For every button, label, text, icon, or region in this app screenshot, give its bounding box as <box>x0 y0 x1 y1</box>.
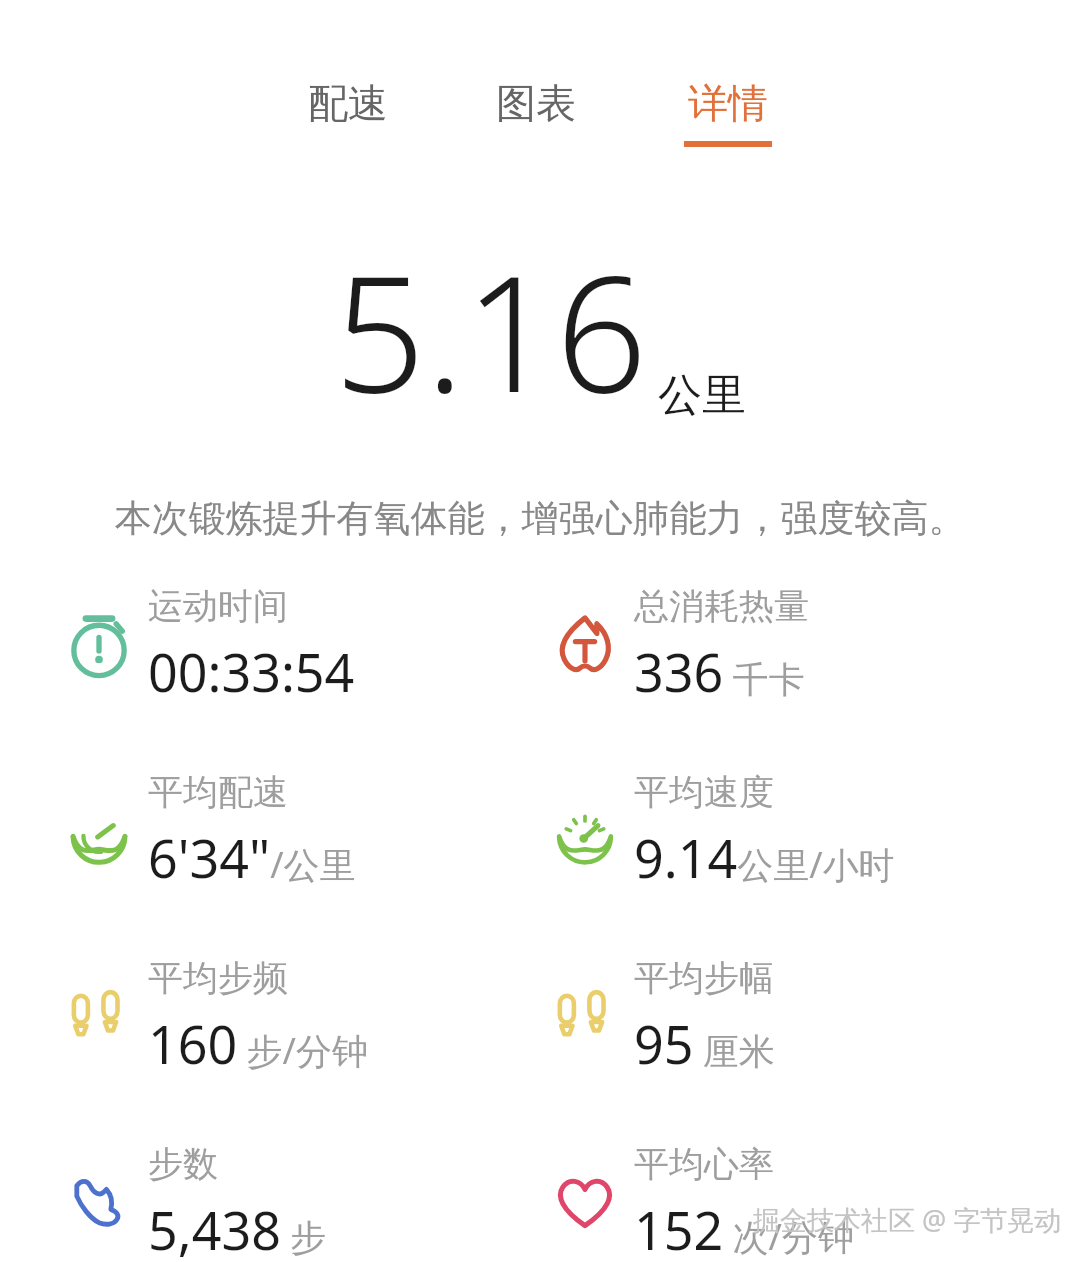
staticText: 5.16 <box>334 221 648 439</box>
staticText: 总消耗热量 <box>634 584 809 628</box>
other: 步频 <box>62 981 136 1055</box>
staticText: 平均速度 <box>634 770 774 814</box>
staticText: 00:33:54 <box>148 636 355 707</box>
button[interactable]: 平均速度 <box>548 770 1080 893</box>
button[interactable]: 总消耗热量 <box>548 584 1080 707</box>
staticText: 图表 <box>496 78 576 128</box>
staticText: 95 厘米 <box>634 1008 775 1079</box>
other: 步频 <box>548 981 622 1055</box>
staticText: 152 次/分钟 <box>634 1194 854 1262</box>
button[interactable]: 平均心率 <box>548 1142 1080 1262</box>
staticText: 平均心率 <box>634 1142 774 1186</box>
other: 总消耗热量 <box>548 609 622 683</box>
staticText: 公里 <box>658 368 746 423</box>
button[interactable]: 平均配速 <box>62 770 540 893</box>
button[interactable]: 步频 <box>548 956 1080 1079</box>
button[interactable]: 步频 <box>62 956 540 1079</box>
staticText: 本次锻炼提升有氧体能，增强心肺能力，强度较高。 <box>0 495 1080 542</box>
other: 平均速度 <box>548 795 622 869</box>
other: 运动时间 <box>62 609 136 683</box>
staticText: 掘金技术社区 @ 字节晃动 <box>753 1201 1062 1238</box>
staticText: 配速 <box>308 78 388 128</box>
button[interactable]: 运动时间 <box>62 584 540 707</box>
staticText: 平均步幅 <box>634 956 774 1000</box>
other: 平均配速 <box>62 795 136 869</box>
button[interactable]: 配速 <box>282 74 414 151</box>
staticText: 平均配速 <box>148 770 288 814</box>
button[interactable]: 详情 <box>658 74 798 151</box>
staticText: 6'34"/公里 <box>148 822 356 893</box>
other: 步数 <box>62 1165 136 1239</box>
staticText: 详情 <box>688 78 768 128</box>
staticText: 5,438 步 <box>148 1194 327 1262</box>
button[interactable]: 图表 <box>470 74 602 151</box>
staticText: 运动时间 <box>148 584 288 628</box>
staticText: 9.14公里/小时 <box>634 822 895 893</box>
staticText: 平均步频 <box>148 956 288 1000</box>
other: 平均心率 <box>548 1165 622 1239</box>
staticText: 336 千卡 <box>634 636 805 707</box>
button[interactable]: 步数 <box>62 1142 540 1262</box>
staticText: 步数 <box>148 1142 218 1186</box>
staticText: 160 步/分钟 <box>148 1008 368 1079</box>
